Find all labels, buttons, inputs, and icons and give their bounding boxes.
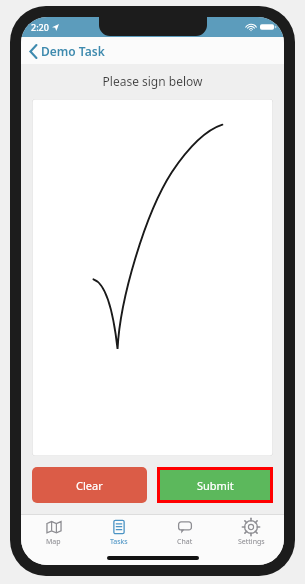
staticText: Tasks: [110, 537, 128, 547]
button[interactable]: Clear: [32, 467, 147, 503]
button[interactable]: Settings: [218, 515, 284, 551]
staticText: Chat: [177, 537, 193, 547]
staticText: Clear: [76, 478, 103, 493]
button[interactable]: Submit: [160, 470, 270, 500]
staticText: Please sign below: [21, 73, 284, 89]
button[interactable]: Tasks: [86, 515, 152, 551]
staticText: 2:20: [31, 21, 49, 33]
staticText: Map: [46, 537, 61, 547]
button[interactable]: Demo Task: [27, 40, 108, 62]
button[interactable]: Map: [21, 515, 86, 551]
staticText: Settings: [238, 537, 265, 547]
staticText: Submit: [197, 478, 234, 493]
staticText: Demo Task: [41, 43, 105, 59]
button[interactable]: Chat: [152, 515, 218, 551]
